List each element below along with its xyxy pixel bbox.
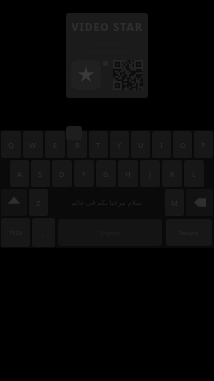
staticText: ?123 <box>9 229 22 237</box>
staticText: E <box>53 140 58 150</box>
staticText: P <box>201 140 206 150</box>
staticText: Z <box>36 198 41 208</box>
staticText: Q <box>8 140 14 150</box>
button[interactable]: VIDEO STAR <box>66 13 148 98</box>
staticText: سلام مرحبا بكم في عالم <box>71 198 142 208</box>
other: QR code <box>113 60 143 90</box>
staticText: VIDEO STAR <box>71 19 143 34</box>
staticText: F <box>82 169 86 179</box>
staticText: W <box>29 140 37 150</box>
staticText: H <box>125 169 131 179</box>
staticText: G <box>103 169 109 179</box>
staticText: A <box>17 169 22 179</box>
staticText: Return <box>179 229 199 237</box>
staticText: K <box>170 169 175 179</box>
staticText: Y <box>117 140 122 150</box>
staticText: M <box>171 198 178 208</box>
button[interactable]: Shift <box>1 189 27 216</box>
staticText: S <box>38 169 43 179</box>
staticText: R <box>75 140 80 150</box>
staticText: English <box>100 229 121 237</box>
staticText: L <box>192 169 197 179</box>
staticText: D <box>59 169 65 179</box>
button[interactable]: App icon <box>71 60 101 90</box>
button[interactable]: R <box>67 131 87 158</box>
staticText: T <box>96 140 101 150</box>
staticText: O <box>180 140 186 150</box>
staticText: U <box>138 140 144 150</box>
button[interactable]: Backspace <box>186 189 213 216</box>
staticText: I <box>160 140 163 150</box>
staticText: J <box>149 169 152 179</box>
